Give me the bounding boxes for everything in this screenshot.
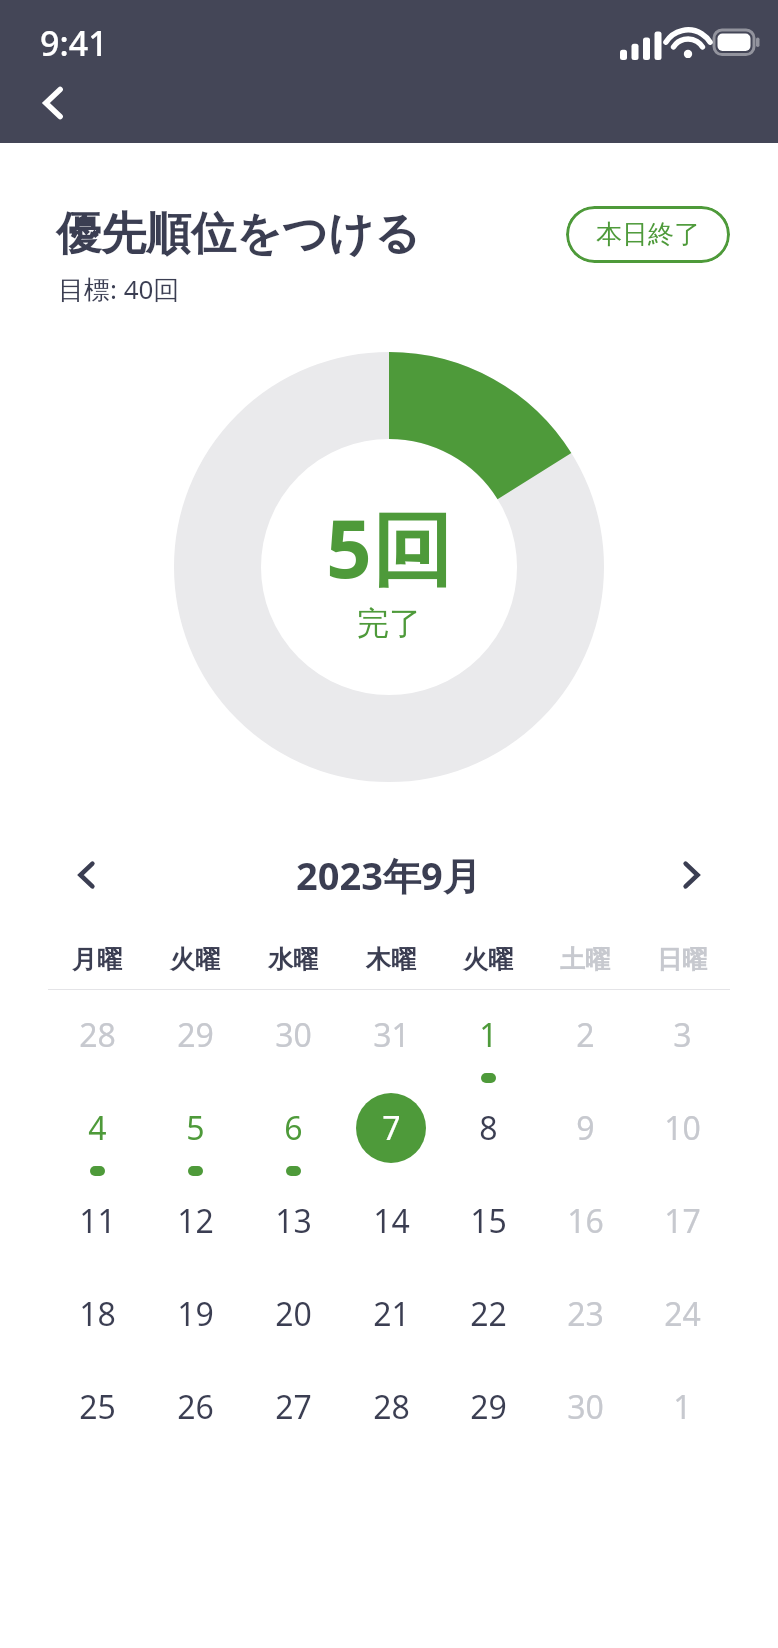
button[interactable]: 6 xyxy=(244,1083,342,1176)
button[interactable]: 1 xyxy=(439,990,536,1083)
staticText: 土曜 xyxy=(560,944,610,975)
staticText: 火曜 xyxy=(463,944,513,975)
staticText: 9:41 xyxy=(40,20,108,66)
staticText: 23 xyxy=(567,1292,604,1336)
button[interactable]: 9 xyxy=(536,1083,633,1176)
button[interactable]: 21 xyxy=(342,1269,439,1362)
staticText: 17 xyxy=(664,1199,701,1243)
staticText: 9 xyxy=(576,1106,595,1150)
button[interactable]: 3 xyxy=(633,990,730,1083)
button[interactable]: 15 xyxy=(439,1176,536,1269)
staticText: 28 xyxy=(79,1013,116,1057)
staticText: 木曜 xyxy=(366,944,416,975)
staticText: 2023年9月 xyxy=(296,849,481,901)
staticText: 13 xyxy=(275,1199,312,1243)
button[interactable]: Back xyxy=(22,71,86,135)
staticText: 29 xyxy=(177,1013,214,1057)
button[interactable]: 14 xyxy=(342,1176,439,1269)
staticText: 31 xyxy=(373,1013,410,1057)
staticText: 21 xyxy=(373,1292,410,1336)
staticText: 火曜 xyxy=(170,944,220,975)
staticText: 4 xyxy=(88,1106,107,1150)
button[interactable]: 1 xyxy=(633,1362,730,1455)
staticText: 月曜 xyxy=(72,944,122,975)
button[interactable]: 22 xyxy=(439,1269,536,1362)
button[interactable]: 7 xyxy=(342,1083,439,1176)
staticText: 27 xyxy=(275,1385,312,1429)
staticText: 8 xyxy=(479,1106,498,1150)
staticText: 30 xyxy=(275,1013,312,1057)
staticText: 29 xyxy=(470,1385,507,1429)
button[interactable]: 29 xyxy=(146,990,244,1083)
button[interactable]: 31 xyxy=(342,990,439,1083)
staticText: 30 xyxy=(567,1385,604,1429)
button[interactable]: 12 xyxy=(146,1176,244,1269)
staticText: 5回 xyxy=(326,492,452,601)
button[interactable]: 19 xyxy=(146,1269,244,1362)
staticText: 28 xyxy=(373,1385,410,1429)
button[interactable]: 20 xyxy=(244,1269,342,1362)
button[interactable]: Next month xyxy=(656,840,726,910)
staticText: 2 xyxy=(576,1013,595,1057)
staticText: 本日終了 xyxy=(596,218,700,251)
staticText: 19 xyxy=(177,1292,214,1336)
staticText: 14 xyxy=(373,1199,410,1243)
staticText: 完了 xyxy=(357,603,421,643)
staticText: 1 xyxy=(479,1013,498,1057)
staticText: 1 xyxy=(673,1385,692,1429)
button[interactable]: 16 xyxy=(536,1176,633,1269)
staticText: 7 xyxy=(382,1106,401,1150)
staticText: 目標: 40回 xyxy=(58,271,180,307)
staticText: 18 xyxy=(79,1292,116,1336)
button[interactable]: 13 xyxy=(244,1176,342,1269)
staticText: 15 xyxy=(470,1199,507,1243)
staticText: 16 xyxy=(567,1199,604,1243)
staticText: 5 xyxy=(186,1106,205,1150)
button[interactable]: 8 xyxy=(439,1083,536,1176)
staticText: 25 xyxy=(79,1385,116,1429)
button[interactable]: 28 xyxy=(48,990,146,1083)
staticText: 22 xyxy=(470,1292,507,1336)
staticText: 3 xyxy=(673,1013,692,1057)
button[interactable]: 10 xyxy=(633,1083,730,1176)
button[interactable]: 30 xyxy=(536,1362,633,1455)
staticText: 20 xyxy=(275,1292,312,1336)
staticText: 日曜 xyxy=(657,944,707,975)
button[interactable]: 25 xyxy=(48,1362,146,1455)
button[interactable]: 27 xyxy=(244,1362,342,1455)
button[interactable]: 4 xyxy=(48,1083,146,1176)
staticText: 優先順位をつける xyxy=(56,206,421,263)
button[interactable]: 24 xyxy=(633,1269,730,1362)
button[interactable]: 18 xyxy=(48,1269,146,1362)
staticText: 水曜 xyxy=(268,944,318,975)
staticText: 12 xyxy=(177,1199,214,1243)
button[interactable]: 17 xyxy=(633,1176,730,1269)
button[interactable]: 2 xyxy=(536,990,633,1083)
staticText: 24 xyxy=(664,1292,701,1336)
button[interactable]: 23 xyxy=(536,1269,633,1362)
staticText: 26 xyxy=(177,1385,214,1429)
button[interactable]: 本日終了 xyxy=(566,206,730,263)
staticText: 11 xyxy=(79,1199,116,1243)
staticText: 10 xyxy=(664,1106,701,1150)
button[interactable]: 26 xyxy=(146,1362,244,1455)
button[interactable]: 29 xyxy=(439,1362,536,1455)
button[interactable]: 5 xyxy=(146,1083,244,1176)
button[interactable]: 11 xyxy=(48,1176,146,1269)
button[interactable]: Previous month xyxy=(52,840,122,910)
button[interactable]: 28 xyxy=(342,1362,439,1455)
button[interactable]: 30 xyxy=(244,990,342,1083)
staticText: 6 xyxy=(284,1106,303,1150)
